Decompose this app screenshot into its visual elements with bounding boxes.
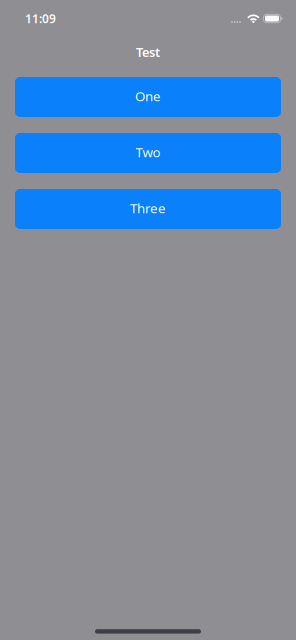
button[interactable]: One xyxy=(15,77,281,117)
button[interactable]: Two xyxy=(15,133,281,173)
button[interactable]: Three xyxy=(15,189,281,229)
staticText: Three xyxy=(130,199,166,217)
staticText: One xyxy=(135,87,161,105)
staticText: Two xyxy=(135,143,160,161)
staticText: Test xyxy=(136,43,160,60)
navigationBar: Test xyxy=(0,37,296,63)
staticText: 11:09 xyxy=(25,10,56,26)
